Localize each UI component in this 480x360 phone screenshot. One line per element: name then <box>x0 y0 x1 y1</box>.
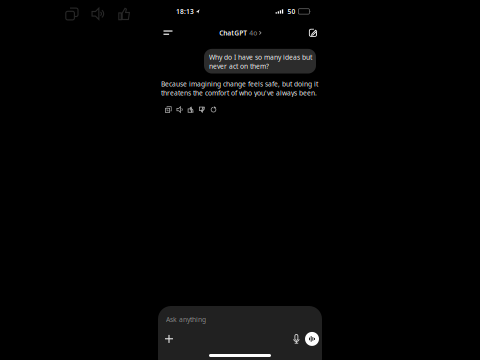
button[interactable]: Voice mode <box>304 332 320 346</box>
button[interactable]: Dictate <box>289 332 304 346</box>
staticText: Ask anything <box>166 315 206 324</box>
button[interactable]: Bad response <box>199 106 205 113</box>
button[interactable]: Add photos and files <box>161 332 177 346</box>
staticText: 18:13 <box>176 7 194 16</box>
button[interactable]: Good response <box>188 106 194 113</box>
staticText: Why do I have so many ideas but never ac… <box>209 53 312 71</box>
staticText: Because imagining change feels safe, but… <box>161 80 318 97</box>
button[interactable]: Regenerate <box>210 106 217 113</box>
button[interactable]: Like <box>111 3 137 25</box>
button[interactable]: Sound <box>85 3 111 25</box>
button[interactable]: Show sidebar <box>157 24 179 42</box>
staticText: 50 <box>287 7 295 16</box>
staticText: ChatGPT <box>219 28 247 37</box>
button[interactable]: Copy <box>165 106 172 113</box>
button[interactable]: New chat <box>302 24 324 42</box>
button[interactable]: Copy <box>59 3 85 25</box>
button[interactable]: ChatGPT <box>216 24 265 42</box>
button[interactable]: Read aloud <box>176 106 183 113</box>
staticText: 4o <box>249 28 257 37</box>
